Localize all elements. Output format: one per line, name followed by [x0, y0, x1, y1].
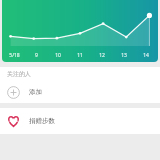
other: 添加	[7, 86, 20, 99]
staticText: 9	[35, 52, 38, 59]
staticText: 11	[77, 52, 83, 59]
staticText: 5/18	[9, 52, 20, 59]
staticText: 关注的人	[7, 70, 31, 78]
staticText: 13	[121, 52, 127, 59]
staticText: 12	[99, 52, 105, 59]
staticText: 捐赠步数	[29, 117, 55, 125]
button[interactable]: 5/18	[2, 0, 158, 62]
staticText: 14	[143, 52, 149, 59]
staticText: 10	[55, 52, 61, 59]
button[interactable]: 添加	[0, 81, 160, 103]
other: 捐赠步数	[7, 115, 20, 128]
staticText: 添加	[29, 88, 42, 96]
button[interactable]: 捐赠步数	[0, 108, 160, 134]
